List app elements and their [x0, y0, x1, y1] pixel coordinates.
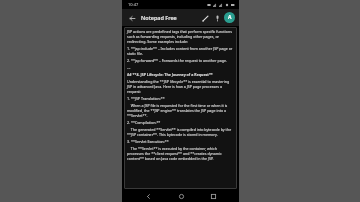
- staticText: 1. **jsp:include** – Includes content fr…: [127, 46, 234, 56]
- button[interactable]: Edit: [199, 12, 211, 24]
- button[interactable]: Recent apps: [207, 190, 219, 202]
- button[interactable]: JSP actions are predefined tags that per…: [124, 27, 237, 189]
- staticText: ---: [127, 65, 234, 70]
- staticText: Notepad Free: [141, 14, 177, 21]
- staticText: 10:47: [128, 2, 139, 7]
- button[interactable]: Share: [211, 12, 223, 24]
- staticText: 3. **Servlet Execution:**: [127, 139, 234, 144]
- staticText: Understanding the **JSP lifecycle** is e…: [127, 79, 234, 94]
- button[interactable]: Home: [175, 190, 187, 202]
- button[interactable]: Back: [126, 12, 138, 24]
- button[interactable]: Account: [224, 12, 235, 23]
- staticText: JSP actions are predefined tags that per…: [127, 29, 234, 44]
- staticText: 2. **jsp:forward** – Forwards the reques…: [127, 58, 234, 63]
- button[interactable]: Back: [142, 190, 154, 202]
- staticText: A: [228, 14, 232, 21]
- staticText: 1. **JSP Translation:**: [127, 96, 234, 101]
- staticText: When a JSP file is requested for the fir…: [127, 103, 234, 118]
- staticText: The **Servlet** is executed by the conta…: [127, 146, 234, 161]
- staticText: The generated **Servlet** is compiled in…: [127, 127, 234, 137]
- staticText: ## **4. JSP Lifecycle: The Journey of a …: [127, 72, 234, 77]
- staticText: 2. **Compilation:**: [127, 120, 234, 125]
